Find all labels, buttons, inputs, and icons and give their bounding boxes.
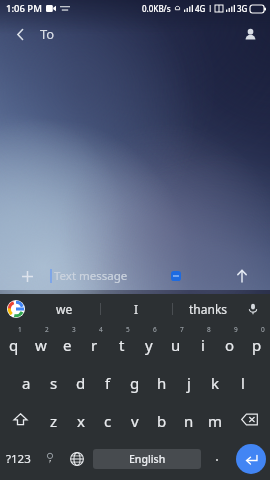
button[interactable]: h: [148, 362, 175, 400]
button[interactable]: Back: [4, 18, 36, 50]
staticText: r: [91, 335, 98, 355]
staticText: s: [50, 373, 58, 393]
button[interactable]: Enter: [236, 444, 266, 474]
staticText: i: [201, 335, 205, 355]
staticText: b: [157, 411, 167, 431]
button[interactable]: 9: [216, 324, 243, 362]
button[interactable]: Voice input: [241, 297, 265, 321]
button[interactable]: 5: [108, 324, 135, 362]
staticText: g: [130, 373, 140, 393]
staticText: z: [50, 411, 58, 431]
button[interactable]: s: [40, 362, 67, 400]
staticText: t: [119, 335, 125, 355]
button[interactable]: Period: [203, 438, 231, 480]
staticText: 1:06 PM: [6, 2, 42, 15]
button[interactable]: Add attachment: [14, 263, 40, 289]
staticText: j: [187, 373, 191, 393]
button[interactable]: 8: [189, 324, 216, 362]
staticText: o: [225, 335, 235, 355]
staticText: a: [22, 373, 31, 393]
staticText: I: [134, 301, 139, 317]
button[interactable]: x: [67, 400, 94, 438]
staticText: 4: [99, 325, 103, 334]
staticText: 8: [207, 325, 211, 334]
staticText: y: [145, 335, 153, 355]
button[interactable]: g: [121, 362, 148, 400]
button[interactable]: n: [175, 400, 202, 438]
staticText: we: [56, 301, 73, 317]
staticText: 0.0KB/s: [142, 3, 171, 14]
staticText: x: [77, 411, 85, 431]
button[interactable]: Contacts: [235, 19, 265, 49]
staticText: f: [105, 373, 111, 393]
staticText: v: [131, 411, 139, 431]
button[interactable]: Shift: [0, 400, 40, 438]
staticText: m: [208, 411, 223, 431]
button[interactable]: Change language: [63, 438, 91, 480]
button[interactable]: l: [229, 362, 256, 400]
button[interactable]: 3: [54, 324, 81, 362]
staticText: 5: [126, 325, 130, 334]
staticText: k: [211, 373, 220, 393]
staticText: Text message: [54, 268, 128, 284]
staticText: c: [104, 411, 112, 431]
button[interactable]: Comma: [37, 438, 63, 480]
button[interactable]: b: [148, 400, 175, 438]
button[interactable]: we: [28, 294, 100, 324]
staticText: u: [171, 335, 181, 355]
button[interactable]: m: [202, 400, 229, 438]
staticText: 9: [234, 325, 238, 334]
staticText: e: [63, 335, 72, 355]
button[interactable]: z: [40, 400, 67, 438]
button[interactable]: 4: [81, 324, 108, 362]
staticText: w: [35, 335, 47, 355]
staticText: ?123: [6, 451, 31, 467]
button[interactable]: Text message: [50, 263, 170, 289]
button[interactable]: j: [175, 362, 202, 400]
staticText: q: [9, 335, 19, 355]
staticText: 3: [72, 325, 76, 334]
staticText: 4G: [195, 3, 206, 14]
staticText: n: [184, 411, 194, 431]
button[interactable]: a: [13, 362, 40, 400]
staticText: d: [76, 373, 86, 393]
staticText: 2: [45, 325, 49, 334]
button[interactable]: 7: [162, 324, 189, 362]
staticText: 3G: [237, 3, 248, 14]
button[interactable]: 1: [0, 324, 27, 362]
button[interactable]: thanks: [173, 294, 244, 324]
button[interactable]: Google: [5, 298, 27, 320]
button[interactable]: English: [93, 449, 201, 469]
staticText: 1: [18, 325, 22, 334]
staticText: To: [40, 25, 55, 43]
button[interactable]: c: [94, 400, 121, 438]
button[interactable]: d: [67, 362, 94, 400]
button[interactable]: 0: [243, 324, 270, 362]
staticText: 7: [180, 325, 184, 334]
staticText: English: [129, 452, 166, 466]
staticText: 0: [261, 325, 265, 334]
button[interactable]: k: [202, 362, 229, 400]
button[interactable]: v: [121, 400, 148, 438]
staticText: thanks: [189, 301, 228, 317]
button[interactable]: ?123: [0, 438, 37, 480]
button[interactable]: Backspace: [229, 400, 270, 438]
staticText: h: [157, 373, 167, 393]
staticText: 6: [153, 325, 157, 334]
button[interactable]: I: [101, 294, 172, 324]
staticText: l: [241, 373, 245, 393]
button[interactable]: 6: [135, 324, 162, 362]
button[interactable]: f: [94, 362, 121, 400]
button[interactable]: Chat features: [168, 268, 184, 284]
staticText: p: [252, 335, 262, 355]
button[interactable]: Send: [228, 262, 256, 290]
button[interactable]: 2: [27, 324, 54, 362]
